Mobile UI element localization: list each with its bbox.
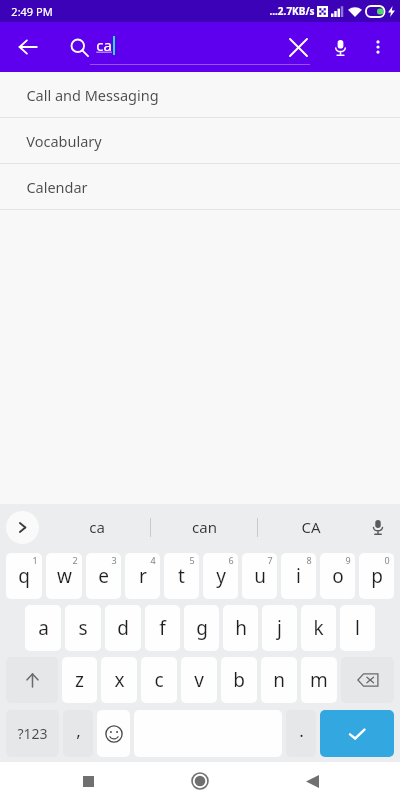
staticText: d	[117, 615, 129, 641]
staticText: ...2.7KB/s	[269, 4, 315, 18]
button[interactable]: can	[151, 507, 257, 547]
staticText: p	[371, 563, 383, 589]
staticText: .	[299, 719, 304, 742]
button[interactable]: n	[261, 657, 297, 703]
button[interactable]: .	[286, 710, 316, 757]
button[interactable]: w	[46, 553, 82, 599]
button[interactable]: ?123	[6, 710, 59, 757]
staticText: 5	[189, 554, 195, 566]
button[interactable]: i	[281, 553, 316, 599]
staticText: 2	[72, 554, 78, 566]
staticText: Calendar	[26, 177, 88, 197]
staticText: 2:49 PM	[11, 4, 53, 19]
button[interactable]: Calendar	[0, 164, 400, 209]
button[interactable]: a	[25, 605, 61, 651]
staticText: m	[310, 667, 328, 693]
staticText: j	[277, 615, 282, 641]
button[interactable]: c	[141, 657, 177, 703]
button[interactable]: Backspace	[341, 657, 394, 703]
staticText: k	[313, 615, 324, 641]
button[interactable]: d	[105, 605, 141, 651]
button[interactable]: l	[340, 605, 375, 651]
button[interactable]: s	[65, 605, 101, 651]
staticText: 1	[32, 554, 38, 566]
staticText: a	[38, 615, 49, 641]
button[interactable]: Recents	[64, 762, 112, 800]
button[interactable]: v	[181, 657, 217, 703]
staticText: v	[194, 667, 204, 693]
button[interactable]: Emoji	[97, 710, 130, 757]
button[interactable]: ,	[63, 710, 93, 757]
button[interactable]: Home	[176, 762, 224, 800]
staticText: n	[273, 667, 285, 693]
button[interactable]: u	[242, 553, 277, 599]
staticText: h	[235, 615, 247, 641]
staticText: q	[18, 563, 30, 589]
staticText: Vocabulary	[26, 131, 102, 151]
button[interactable]: m	[301, 657, 337, 703]
button[interactable]: Call and Messaging	[0, 72, 400, 117]
button[interactable]: Voice search	[320, 27, 360, 67]
staticText: l	[355, 615, 360, 641]
button[interactable]: Enter	[320, 710, 394, 757]
staticText: x	[114, 667, 125, 693]
button[interactable]: Back	[288, 762, 336, 800]
button[interactable]: z	[62, 657, 97, 703]
button[interactable]: f	[145, 605, 180, 651]
staticText: CA	[301, 517, 321, 537]
staticText: s	[78, 615, 88, 641]
button[interactable]: x	[101, 657, 137, 703]
staticText: g	[196, 615, 208, 641]
button[interactable]: More options	[360, 29, 396, 65]
staticText: ca	[96, 35, 112, 55]
staticText: ca	[89, 517, 105, 537]
staticText: can	[192, 517, 217, 537]
staticText: w	[57, 563, 72, 589]
button[interactable]: Vocabulary	[0, 118, 400, 163]
button[interactable]: Voice input	[362, 511, 394, 543]
button[interactable]: e	[86, 553, 121, 599]
staticText: u	[254, 563, 266, 589]
button[interactable]: CA	[258, 507, 364, 547]
button[interactable]: k	[301, 605, 336, 651]
staticText: 7	[267, 554, 273, 566]
staticText: t	[178, 563, 185, 589]
button[interactable]: o	[320, 553, 355, 599]
button[interactable]: p	[359, 553, 394, 599]
staticText: o	[332, 563, 344, 589]
staticText: 0	[384, 554, 390, 566]
staticText: Call and Messaging	[26, 85, 159, 105]
staticText: c	[154, 667, 164, 693]
button[interactable]: Expand suggestions	[6, 511, 39, 544]
staticText: ?123	[17, 724, 48, 743]
staticText: y	[216, 563, 226, 589]
button[interactable]: Clear query	[276, 25, 320, 69]
button[interactable]: g	[184, 605, 219, 651]
button[interactable]: Back	[6, 25, 50, 69]
staticText: z	[75, 667, 84, 693]
staticText: 4	[150, 554, 156, 566]
button[interactable]: Shift	[6, 657, 58, 703]
button[interactable]: r	[125, 553, 160, 599]
button[interactable]: q	[6, 553, 42, 599]
button[interactable]: t	[164, 553, 199, 599]
staticText: 3	[111, 554, 117, 566]
button[interactable]: b	[221, 657, 257, 703]
button[interactable]: ca	[44, 507, 150, 547]
staticText: e	[98, 563, 109, 589]
staticText: f	[159, 615, 166, 641]
staticText: b	[233, 667, 245, 693]
button[interactable]: y	[203, 553, 238, 599]
staticText: 6	[228, 554, 234, 566]
staticText: 8	[306, 554, 312, 566]
button[interactable]: j	[262, 605, 297, 651]
staticText: ,	[76, 719, 81, 742]
staticText: i	[296, 563, 301, 589]
button[interactable]: h	[223, 605, 258, 651]
staticText: 9	[345, 554, 351, 566]
staticText: r	[139, 563, 147, 589]
